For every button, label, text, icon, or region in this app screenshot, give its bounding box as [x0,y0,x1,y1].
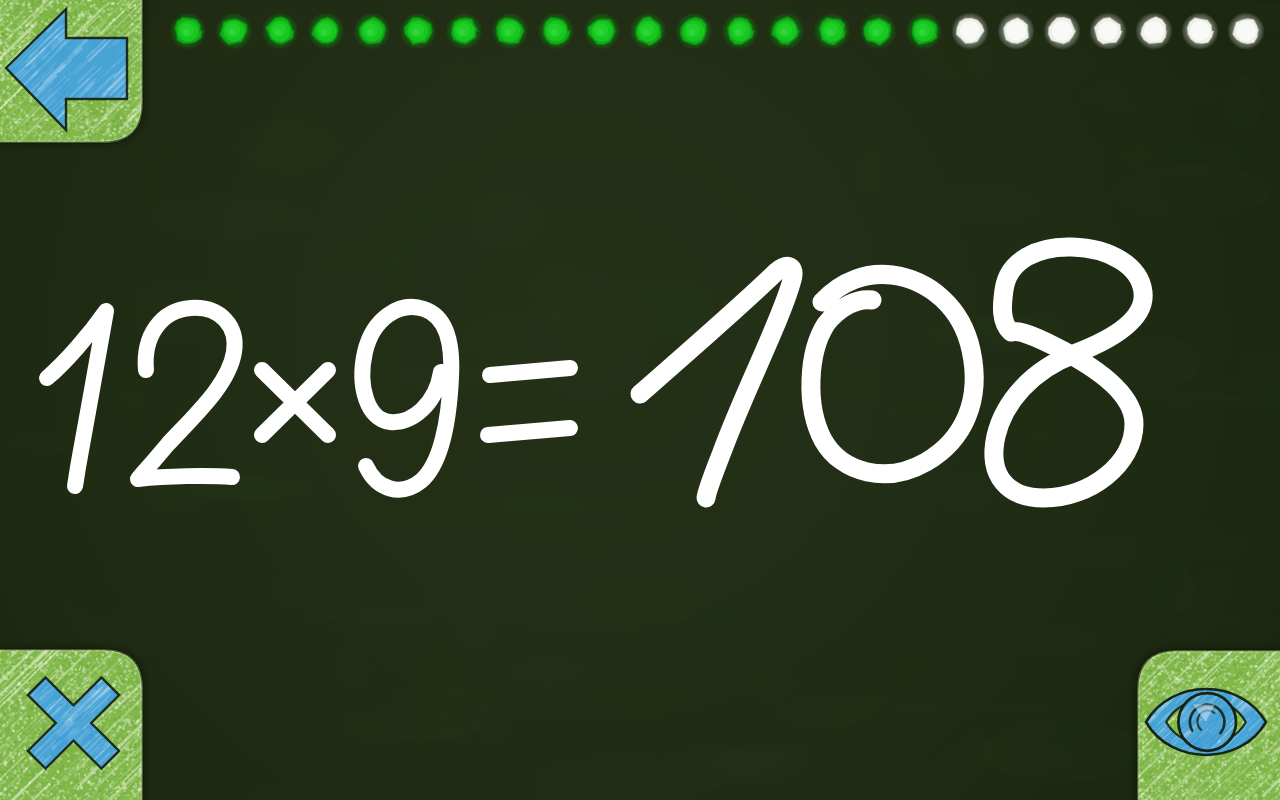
button[interactable]: Clear answer [0,649,143,800]
button[interactable]: Back [0,0,143,143]
button[interactable]: Show answer [1137,650,1280,800]
